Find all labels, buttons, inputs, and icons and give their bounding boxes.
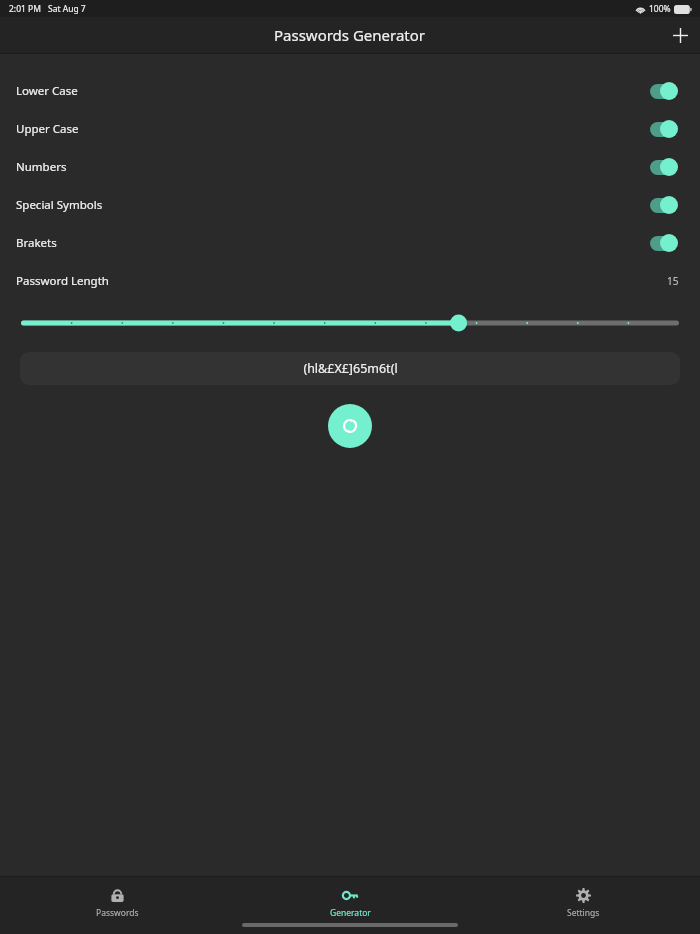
button[interactable]: Toggle <box>649 119 679 139</box>
staticText: Brakets <box>16 235 57 251</box>
button[interactable]: Generator <box>234 885 467 921</box>
staticText: Numbers <box>16 159 67 175</box>
staticText: 2:01 PM <box>9 3 41 15</box>
button[interactable]: Lower Case <box>0 72 700 110</box>
button[interactable]: Toggle <box>649 81 679 101</box>
button[interactable]: (hl&£X£]65m6t(l <box>20 352 680 385</box>
staticText: 15 <box>667 274 679 288</box>
staticText: Password Length <box>16 273 109 289</box>
button[interactable]: Settings <box>467 885 700 921</box>
staticText: Sat Aug 7 <box>48 3 86 15</box>
button[interactable]: Toggle <box>649 157 679 177</box>
button[interactable]: Toggle <box>649 195 679 215</box>
staticText: Generator <box>330 907 371 919</box>
staticText: (hl&£X£]65m6t(l <box>303 360 398 377</box>
button[interactable]: Passwords <box>0 885 234 921</box>
button[interactable]: Upper Case <box>0 110 700 148</box>
staticText: Upper Case <box>16 121 79 137</box>
button[interactable]: Toggle <box>649 233 679 253</box>
staticText: Passwords <box>96 907 139 919</box>
staticText: Passwords Generator <box>274 25 426 45</box>
staticText: 100% <box>649 3 671 15</box>
button[interactable]: Add password <box>666 21 694 49</box>
staticText: Lower Case <box>16 83 78 99</box>
button[interactable]: Brakets <box>0 224 700 262</box>
button[interactable]: Password length slider <box>0 312 700 334</box>
staticText: Special Symbols <box>16 197 103 213</box>
button[interactable]: Numbers <box>0 148 700 186</box>
button[interactable]: Generate new password <box>328 404 372 448</box>
button[interactable]: Special Symbols <box>0 186 700 224</box>
staticText: Settings <box>567 907 600 919</box>
